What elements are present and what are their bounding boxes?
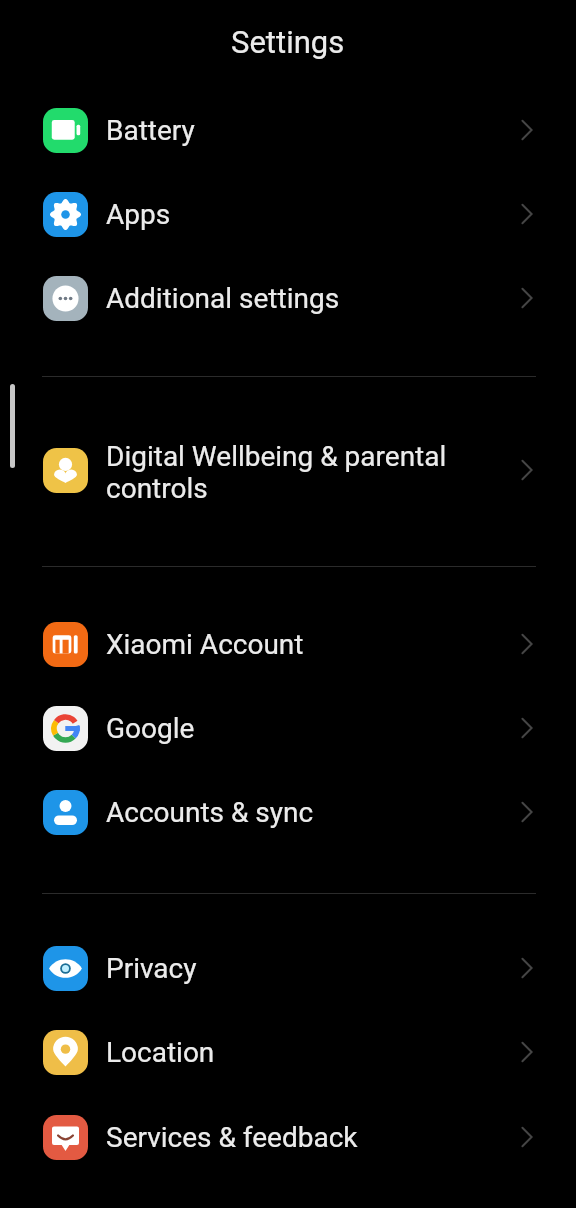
staticText: Battery [106, 114, 195, 147]
other: Services and feedback [43, 1115, 88, 1160]
button[interactable]: Xiaomi Account [0, 602, 576, 686]
staticText: Google [106, 712, 195, 745]
button[interactable]: Google [0, 686, 576, 770]
button[interactable]: Accounts and sync [0, 770, 576, 854]
staticText: Accounts & sync [106, 796, 314, 829]
other: Location [43, 1030, 88, 1075]
other: Google [43, 706, 88, 751]
button[interactable]: Additional settings [0, 256, 576, 340]
other: Accounts and sync [43, 790, 88, 835]
button[interactable]: Privacy [0, 926, 576, 1010]
button[interactable]: Services and feedback [0, 1095, 576, 1179]
staticText: Services & feedback [106, 1121, 358, 1154]
staticText: Digital Wellbeing & parental controls [106, 440, 447, 505]
staticText: Apps [106, 198, 171, 231]
staticText: Settings [231, 24, 345, 60]
other: Additional settings [43, 276, 88, 321]
staticText: Xiaomi Account [106, 628, 304, 661]
other: Apps [43, 192, 88, 237]
other: Battery [43, 108, 88, 153]
button[interactable]: Battery [0, 88, 576, 172]
button[interactable]: Apps [0, 172, 576, 256]
other: Digital Wellbeing [43, 448, 88, 493]
other: Xiaomi Account [43, 622, 88, 667]
button[interactable]: Location [0, 1010, 576, 1094]
staticText: Location [106, 1036, 215, 1069]
other: Privacy [43, 946, 88, 991]
staticText: Privacy [106, 952, 197, 985]
button[interactable]: Digital Wellbeing [0, 428, 576, 512]
staticText: Additional settings [106, 282, 340, 315]
